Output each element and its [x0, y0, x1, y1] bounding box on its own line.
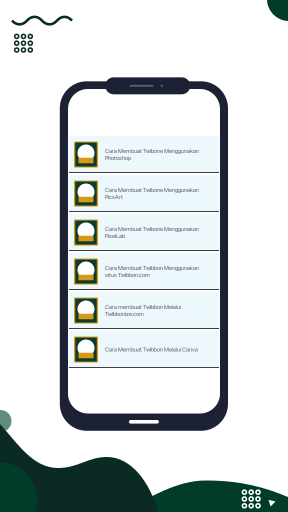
staticText: Cara Membuat Twibone Menggunakan Photosh…	[105, 148, 199, 161]
button[interactable]: Cara membuat Twibbon Melalui Twibbonize.…	[69, 292, 219, 329]
button[interactable]: Cara Membuat Twibbon Menggunakan situs T…	[69, 253, 219, 290]
staticText: Cara Membuat Twibbon Melalui Canva	[105, 346, 198, 353]
staticText: Cara membuat Twibbon Melalui Twibbonize.…	[105, 304, 181, 317]
staticText: Cara Membuat Twibone Menggunakan PicsArt	[105, 187, 199, 200]
button[interactable]: Cara Membuat Twibone Menggunakan PicsArt	[69, 175, 219, 212]
staticText: Cara Membuat Twibbon Menggunakan situs T…	[105, 265, 199, 278]
staticText: Cara Membuat Twibone Menggunakan PixelLa…	[105, 226, 199, 239]
button[interactable]: Cara Membuat Twibone Menggunakan PixelLa…	[69, 214, 219, 251]
button[interactable]: Cara Membuat Twibone Menggunakan Photosh…	[69, 136, 219, 173]
button[interactable]: Cara Membuat Twibbon Melalui Canva	[69, 331, 219, 368]
